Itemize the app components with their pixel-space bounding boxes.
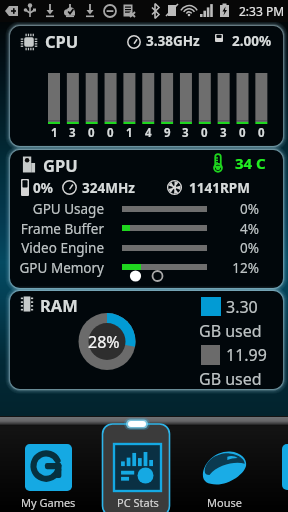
staticText: CPU bbox=[45, 30, 79, 52]
button[interactable]: GPU bbox=[0, 22, 288, 416]
staticText: 9 bbox=[164, 125, 171, 141]
staticText: GPU bbox=[43, 154, 78, 176]
staticText: GPU Usage bbox=[14, 200, 104, 218]
staticText: My Games bbox=[21, 495, 76, 510]
staticText: 34 C bbox=[235, 153, 266, 173]
staticText: 1 bbox=[51, 125, 58, 141]
staticText: GB used bbox=[199, 320, 262, 342]
button[interactable]: Mouse bbox=[190, 422, 258, 512]
staticText: 2.00% bbox=[232, 32, 272, 50]
staticText: 4 bbox=[145, 125, 152, 141]
staticText: 0% bbox=[33, 179, 53, 197]
staticText: 3.38GHz bbox=[146, 32, 200, 50]
staticText: 0 bbox=[201, 125, 208, 141]
staticText: 0 bbox=[239, 125, 246, 141]
staticText: GPU Memory bbox=[14, 259, 104, 277]
staticText: 3 bbox=[220, 125, 227, 141]
staticText: 3 bbox=[69, 125, 76, 141]
staticText: RAM bbox=[40, 294, 78, 316]
staticText: 11.99 bbox=[226, 344, 267, 366]
button[interactable]: RAM bbox=[0, 22, 288, 416]
staticText: Video Engine bbox=[14, 239, 104, 257]
staticText: Mouse bbox=[207, 495, 242, 510]
staticText: 324MHz bbox=[82, 179, 135, 197]
staticText: 0% bbox=[217, 239, 259, 257]
button[interactable]: More bbox=[282, 444, 288, 492]
staticText: 0 bbox=[258, 125, 265, 141]
staticText: 1 bbox=[126, 125, 133, 141]
button[interactable]: PC Stats bbox=[103, 422, 171, 512]
staticText: 0 bbox=[107, 125, 114, 141]
button[interactable]: CPU bbox=[0, 22, 288, 416]
staticText: 1141RPM bbox=[189, 179, 250, 197]
staticText: GB used bbox=[199, 368, 262, 390]
staticText: 3.30 bbox=[226, 296, 258, 318]
staticText: 0% bbox=[217, 200, 259, 218]
staticText: 12% bbox=[217, 259, 259, 277]
staticText: Frame Buffer bbox=[14, 220, 104, 238]
staticText: 28% bbox=[88, 331, 120, 353]
button[interactable]: My Games bbox=[14, 422, 82, 512]
staticText: PC Stats bbox=[117, 495, 159, 510]
staticText: 0 bbox=[88, 125, 95, 141]
staticText: 2:33 PM bbox=[239, 3, 285, 19]
staticText: 3 bbox=[182, 125, 189, 141]
staticText: 4% bbox=[217, 220, 259, 238]
